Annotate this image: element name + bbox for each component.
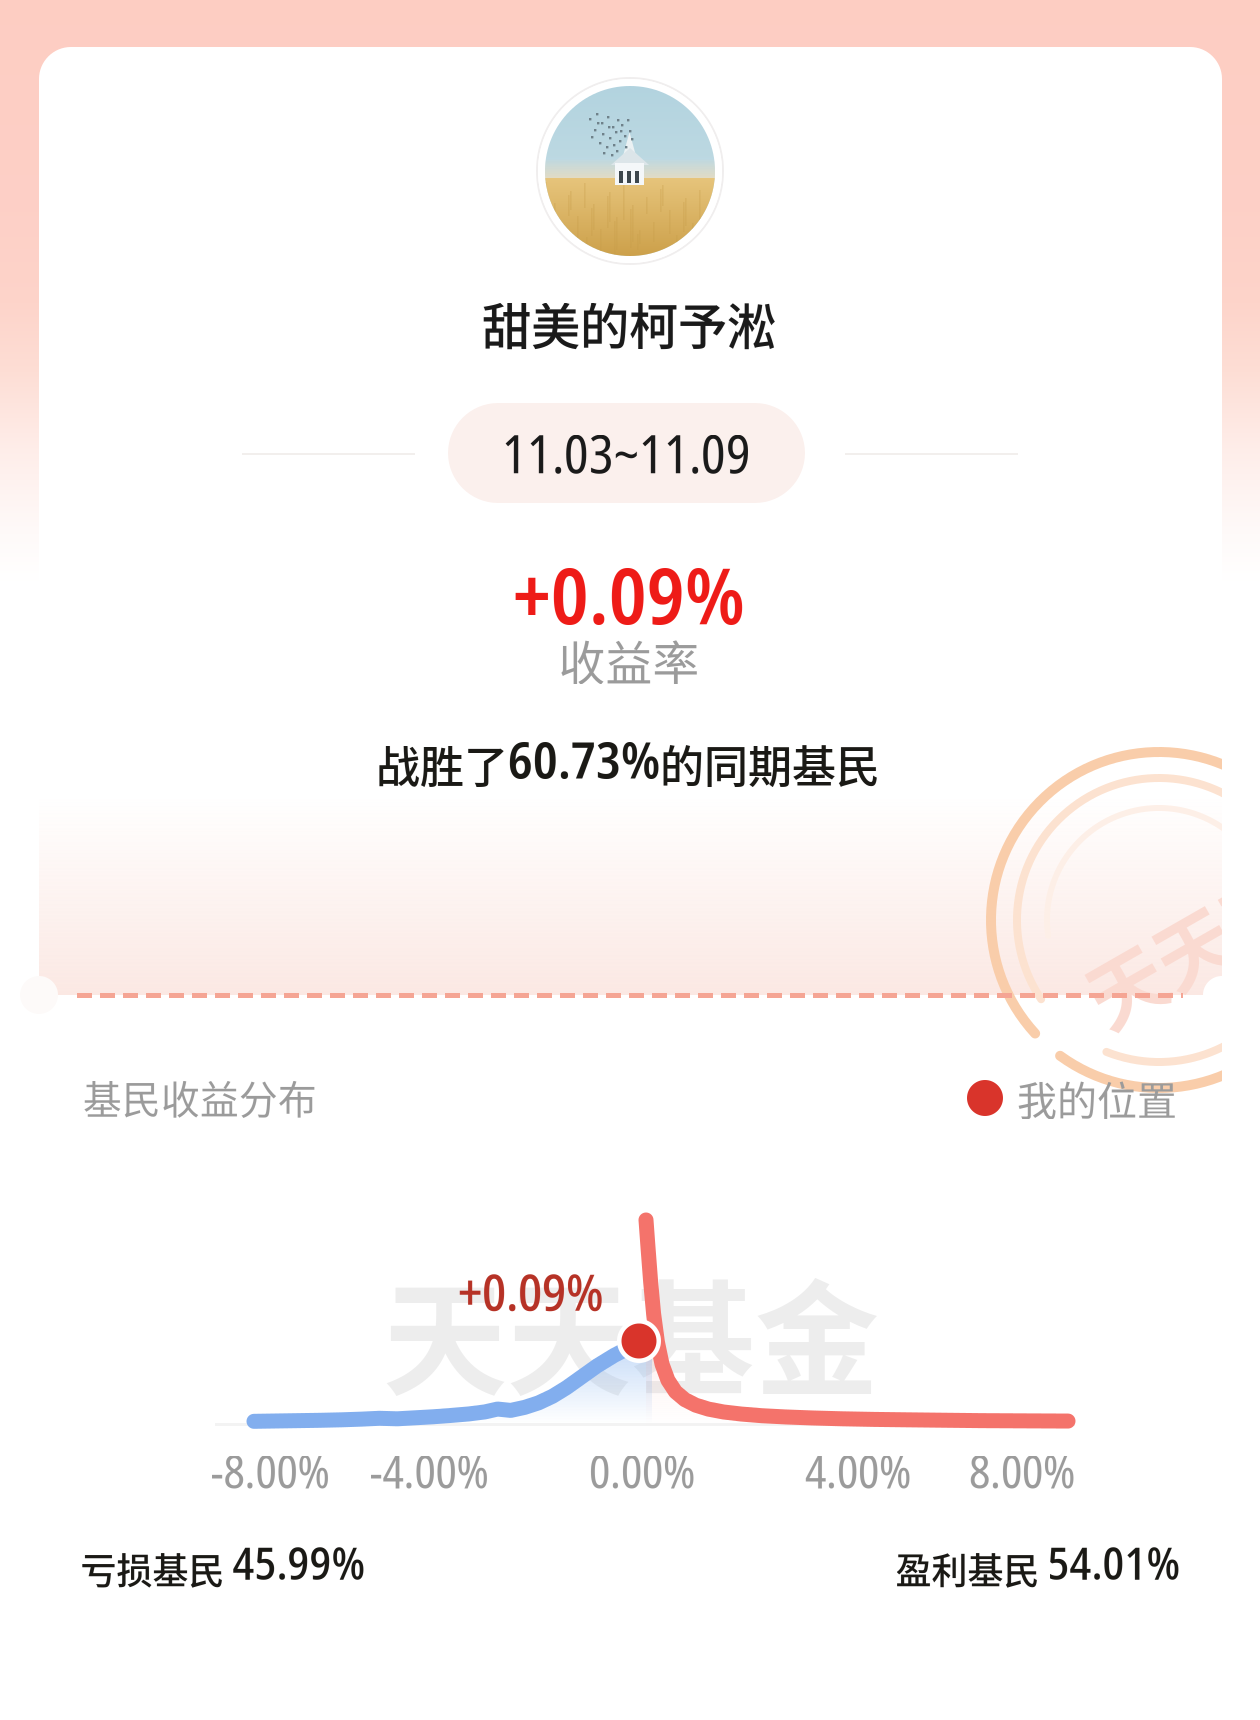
staticText: 8.00%	[969, 1440, 1075, 1502]
staticText: -8.00%	[210, 1440, 329, 1502]
staticText: 11.03~11.09	[502, 418, 751, 488]
staticText: 基民收益分布	[83, 1069, 317, 1125]
staticText: 天天基金	[1071, 870, 1260, 982]
staticText: +0.09%	[513, 541, 745, 647]
staticText: +0.09%	[458, 1256, 604, 1325]
staticText: 4.00%	[805, 1440, 911, 1502]
staticText: 我的位置	[1017, 1069, 1177, 1127]
staticText: 收益率	[558, 626, 699, 694]
staticText: 0.00%	[589, 1440, 695, 1502]
staticText: 甜美的柯予淞	[482, 287, 776, 359]
staticText: 天天基金	[383, 1241, 879, 1421]
staticText: 盈利基民 54.01%	[895, 1532, 1180, 1594]
staticText: 亏损基民 45.99%	[80, 1532, 365, 1594]
staticText: 战胜了60.73%的同期基民	[376, 725, 880, 795]
staticText: -4.00%	[369, 1440, 488, 1502]
